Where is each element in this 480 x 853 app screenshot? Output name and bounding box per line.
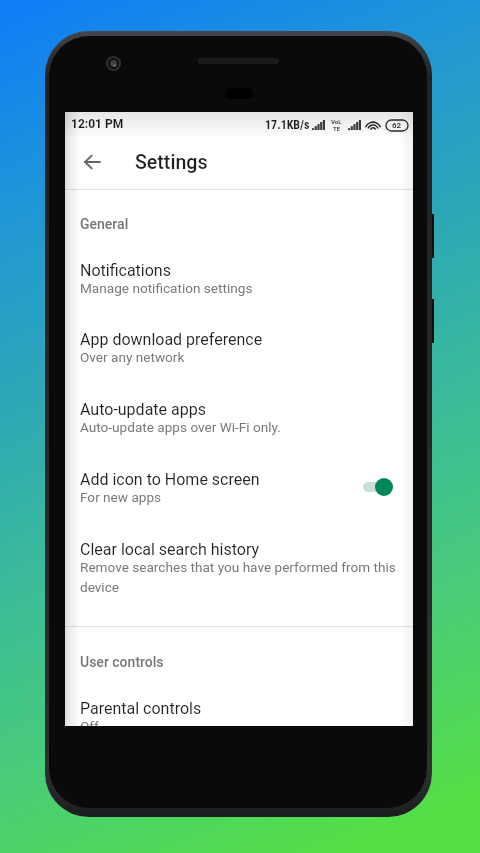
staticText: Add icon to Home screen [80, 470, 260, 489]
staticText: 17.1KB/s [265, 118, 310, 132]
staticText: Clear local search history [80, 540, 260, 559]
staticText: For new apps [80, 489, 396, 505]
button[interactable]: Back [72, 142, 112, 182]
staticText: Manage notification settings [80, 280, 396, 296]
staticText: VoL [331, 118, 342, 125]
button[interactable]: Add icon to Home screen [65, 461, 413, 517]
button[interactable]: Notifications [65, 252, 413, 308]
button[interactable]: App download preference [65, 321, 413, 377]
staticText: Over any network [80, 349, 396, 365]
staticText: Settings [135, 151, 208, 174]
staticText: General [80, 216, 129, 232]
staticText: 62 [392, 121, 402, 130]
staticText: User controls [80, 654, 164, 670]
button[interactable]: Clear local search history [65, 531, 413, 587]
staticText: TE [333, 125, 341, 132]
staticText: 12:01 PM [71, 117, 124, 131]
button[interactable]: Auto-update apps [65, 391, 413, 447]
staticText: Remove searches that you have performed … [80, 559, 396, 595]
button[interactable]: Parental controls [65, 690, 413, 726]
staticText: Auto-update apps [80, 400, 206, 419]
button[interactable]: Toggle add icon to Home screen [356, 473, 396, 501]
staticText: App download preference [80, 330, 263, 349]
staticText: Notifications [80, 261, 171, 280]
staticText: Off [80, 718, 396, 726]
staticText: Parental controls [80, 699, 202, 718]
staticText: Auto-update apps over Wi-Fi only. [80, 419, 396, 435]
